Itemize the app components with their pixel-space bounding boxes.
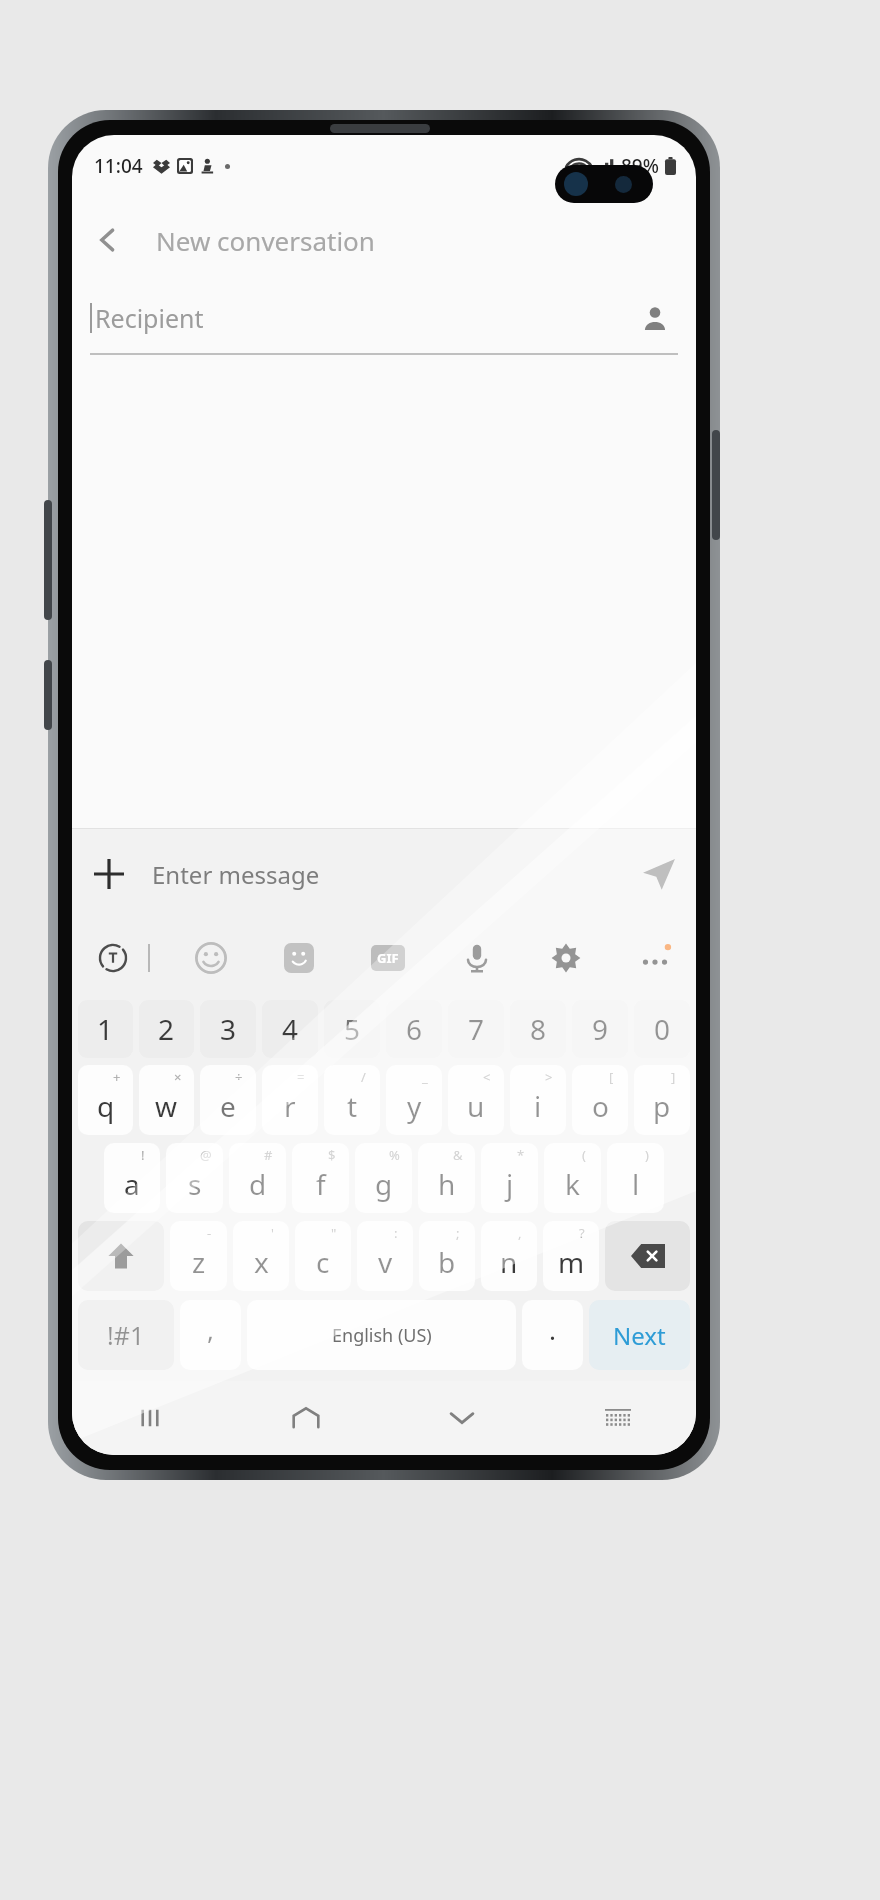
staticText: > xyxy=(545,1068,553,1086)
button[interactable]: Settings xyxy=(539,931,593,985)
button[interactable]: : xyxy=(357,1221,413,1291)
button[interactable]: ? xyxy=(543,1221,599,1291)
button[interactable]: ' xyxy=(233,1221,289,1291)
button[interactable]: % xyxy=(355,1143,412,1213)
staticText: l xyxy=(632,1165,640,1203)
button[interactable]: 8 xyxy=(510,1000,566,1058)
staticText: w xyxy=(155,1087,178,1125)
button[interactable]: Send xyxy=(622,837,696,911)
staticText: s xyxy=(188,1165,202,1203)
button[interactable]: Shift xyxy=(78,1221,164,1291)
button[interactable]: 1 xyxy=(78,1000,133,1058)
staticText: < xyxy=(483,1068,491,1086)
staticText: u xyxy=(467,1087,485,1125)
staticText: 5 xyxy=(344,1010,361,1048)
staticText: @ xyxy=(200,1146,212,1164)
staticText: 4 xyxy=(282,1010,299,1048)
button[interactable]: × xyxy=(139,1065,194,1135)
button[interactable]: !#1 xyxy=(78,1300,174,1370)
button[interactable]: Recipient xyxy=(90,283,678,353)
staticText: a xyxy=(124,1165,140,1203)
button[interactable]: ÷ xyxy=(200,1065,256,1135)
staticText: o xyxy=(592,1087,609,1125)
button[interactable]: 9 xyxy=(572,1000,628,1058)
staticText: 11:04 xyxy=(94,153,143,179)
staticText: / xyxy=(361,1068,366,1086)
staticText: r xyxy=(284,1087,296,1125)
button[interactable]: Home xyxy=(228,1381,384,1455)
staticText: x xyxy=(254,1243,269,1281)
button[interactable]: Emoji xyxy=(184,931,238,985)
staticText: ] xyxy=(671,1068,676,1086)
staticText: Recipient xyxy=(95,301,204,335)
button[interactable]: [ xyxy=(572,1065,628,1135)
staticText: c xyxy=(316,1243,330,1281)
button[interactable]: 0 xyxy=(634,1000,690,1058)
staticText: 1 xyxy=(97,1010,114,1048)
button[interactable]: . xyxy=(522,1300,583,1370)
staticText: % xyxy=(389,1146,400,1164)
button[interactable]: Hide keyboard xyxy=(384,1381,540,1455)
staticText: English (US) xyxy=(332,1323,432,1348)
staticText: t xyxy=(347,1087,358,1125)
staticText: + xyxy=(113,1068,121,1086)
button[interactable]: Stickers xyxy=(272,931,326,985)
button[interactable]: Back xyxy=(72,204,144,276)
button[interactable]: English (US) xyxy=(247,1300,516,1370)
button[interactable]: # xyxy=(229,1143,286,1213)
button[interactable]: " xyxy=(295,1221,351,1291)
button[interactable]: ! xyxy=(104,1143,160,1213)
staticText: 2 xyxy=(158,1010,175,1048)
button[interactable]: GIF xyxy=(361,931,415,985)
button[interactable]: 4 xyxy=(262,1000,318,1058)
button[interactable]: 6 xyxy=(386,1000,442,1058)
button[interactable]: Next xyxy=(589,1300,690,1370)
staticText: [ xyxy=(609,1068,614,1086)
staticText: = xyxy=(297,1068,305,1086)
button[interactable]: Backspace xyxy=(605,1221,690,1291)
staticText: $ xyxy=(328,1146,336,1164)
button[interactable]: More options xyxy=(628,931,682,985)
button[interactable]: , xyxy=(481,1221,537,1291)
staticText: ; xyxy=(456,1224,460,1242)
button[interactable]: 3 xyxy=(200,1000,256,1058)
staticText: g xyxy=(375,1165,393,1203)
button[interactable]: ; xyxy=(419,1221,475,1291)
button[interactable]: 2 xyxy=(139,1000,194,1058)
button[interactable]: , xyxy=(180,1300,241,1370)
button[interactable]: Enter message xyxy=(152,858,622,891)
button[interactable]: ( xyxy=(544,1143,601,1213)
staticText: q xyxy=(97,1087,115,1125)
button[interactable]: Recents xyxy=(72,1381,228,1455)
staticText: , xyxy=(207,1312,214,1347)
staticText: e xyxy=(220,1087,236,1125)
button[interactable]: < xyxy=(448,1065,504,1135)
staticText: d xyxy=(249,1165,267,1203)
button[interactable]: Add attachment xyxy=(72,837,146,911)
staticText: 7 xyxy=(468,1010,485,1048)
button[interactable]: - xyxy=(170,1221,227,1291)
button[interactable]: / xyxy=(324,1065,380,1135)
button[interactable]: = xyxy=(262,1065,318,1135)
staticText: 8 xyxy=(530,1010,547,1048)
button[interactable]: ) xyxy=(607,1143,664,1213)
button[interactable]: 7 xyxy=(448,1000,504,1058)
staticText: k xyxy=(565,1165,580,1203)
button[interactable]: > xyxy=(510,1065,566,1135)
button[interactable]: 5 xyxy=(324,1000,380,1058)
button[interactable]: _ xyxy=(386,1065,442,1135)
button[interactable]: Translate xyxy=(86,931,140,985)
button[interactable]: + xyxy=(78,1065,133,1135)
button[interactable]: Voice input xyxy=(450,931,504,985)
button[interactable]: Contacts xyxy=(632,295,678,341)
staticText: ) xyxy=(645,1146,649,1164)
staticText: f xyxy=(316,1165,326,1203)
button[interactable]: * xyxy=(481,1143,538,1213)
button[interactable]: & xyxy=(418,1143,475,1213)
staticText: : xyxy=(394,1224,398,1242)
button[interactable]: ] xyxy=(634,1065,690,1135)
button[interactable]: Keyboard layout xyxy=(540,1381,696,1455)
button[interactable]: @ xyxy=(166,1143,223,1213)
staticText: * xyxy=(517,1146,525,1164)
button[interactable]: $ xyxy=(292,1143,349,1213)
